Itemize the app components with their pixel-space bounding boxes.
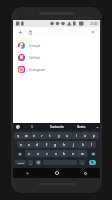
button[interactable]: Instagram	[13, 63, 100, 75]
button[interactable]: t	[46, 132, 54, 139]
button[interactable]: Grato	[69, 123, 94, 130]
button[interactable]: Back	[13, 168, 42, 178]
button[interactable]: q	[14, 132, 22, 139]
button[interactable]: Google	[15, 124, 20, 129]
button[interactable]: v	[51, 150, 60, 157]
button[interactable]: g	[51, 141, 60, 148]
button[interactable]: s	[25, 141, 33, 148]
button[interactable]: w	[22, 132, 30, 139]
staticText: ?123	[18, 161, 24, 164]
staticText: r	[41, 133, 43, 138]
staticText: h	[63, 142, 66, 147]
button[interactable]: l	[87, 141, 96, 148]
button[interactable]: k	[78, 141, 87, 148]
staticText: m	[81, 151, 85, 156]
button[interactable]: Close	[89, 28, 97, 36]
staticText: f	[46, 142, 48, 147]
button[interactable]: Recents	[71, 168, 100, 178]
staticText: u	[66, 133, 69, 138]
staticText: i	[76, 133, 77, 138]
button[interactable]: x	[33, 150, 42, 157]
button[interactable]: More suggestions	[94, 124, 100, 130]
staticText: x	[37, 151, 39, 156]
staticText: t	[49, 133, 51, 138]
staticText: Grato	[77, 125, 86, 129]
staticText: d	[36, 142, 39, 147]
button[interactable]: Home	[42, 168, 71, 178]
button[interactable]: u	[63, 132, 72, 139]
staticText: Google	[29, 43, 41, 48]
staticText: k	[82, 142, 84, 147]
button[interactable]: Google	[13, 39, 100, 51]
button[interactable]: j	[69, 141, 78, 148]
staticText: s	[28, 142, 30, 147]
button[interactable]: z	[25, 150, 33, 157]
staticText: w	[25, 133, 28, 138]
button[interactable]: .	[79, 160, 85, 165]
staticText: j	[73, 142, 74, 147]
button[interactable]: ,	[28, 160, 33, 165]
button[interactable]: e	[30, 132, 38, 139]
button[interactable]: c	[42, 150, 51, 157]
button[interactable]: Emoji	[35, 160, 41, 165]
button[interactable]: f	[42, 141, 51, 148]
staticText: p	[93, 133, 96, 138]
button[interactable]: n	[69, 150, 78, 157]
button[interactable]: G	[20, 123, 44, 130]
button[interactable]: Scotando	[44, 123, 69, 130]
staticText: y	[58, 133, 60, 138]
staticText: o	[84, 133, 87, 138]
button[interactable]: r	[38, 132, 46, 139]
button[interactable]: p	[90, 132, 99, 139]
button[interactable]: b	[60, 150, 69, 157]
button[interactable]: Delete	[26, 28, 34, 36]
button[interactable]: Search	[89, 160, 96, 165]
button[interactable]: Symbols	[15, 160, 26, 165]
button[interactable]: m	[78, 150, 87, 157]
staticText: b	[63, 151, 66, 156]
staticText: Scotando	[50, 125, 64, 129]
button[interactable]: y	[54, 132, 63, 139]
staticText: Instagram	[29, 67, 46, 72]
staticText: g	[54, 142, 57, 147]
staticText: a	[20, 142, 22, 147]
button[interactable]: h	[60, 141, 69, 148]
staticText: q	[17, 133, 20, 138]
staticText: 20:46	[90, 22, 99, 26]
staticText: n	[72, 151, 75, 156]
staticText: .	[82, 161, 83, 165]
button[interactable]: a	[17, 141, 25, 148]
staticText: GitHub	[29, 55, 41, 60]
staticText: z	[28, 151, 30, 156]
button[interactable]: Shift	[14, 150, 25, 157]
button[interactable]: Add	[16, 28, 24, 36]
staticText: G	[31, 125, 34, 129]
staticText: ,	[30, 161, 31, 165]
staticText: l	[91, 142, 92, 147]
button[interactable]: GitHub	[13, 51, 100, 63]
button[interactable]: i	[72, 132, 81, 139]
button[interactable]: o	[81, 132, 90, 139]
button[interactable]: d	[33, 141, 42, 148]
button[interactable]: Backspace	[87, 150, 99, 157]
staticText: v	[55, 151, 57, 156]
staticText: e	[33, 133, 35, 138]
staticText: c	[46, 151, 48, 156]
